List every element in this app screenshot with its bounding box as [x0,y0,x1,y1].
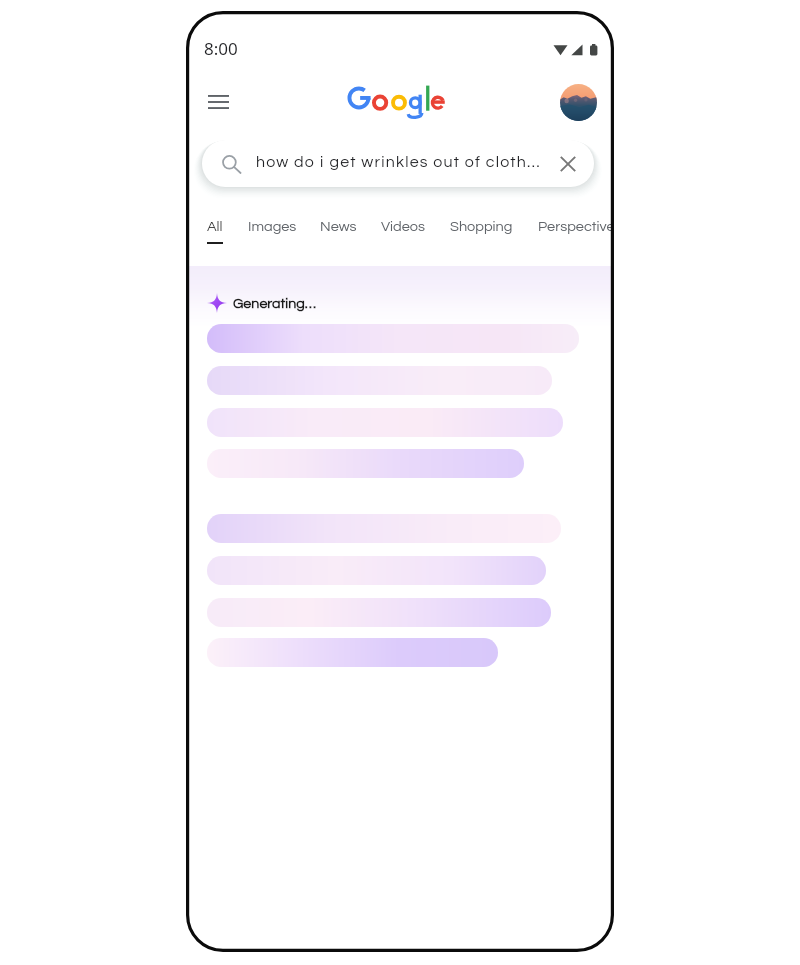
button[interactable]: Shopping [441,214,522,244]
staticText: 8:00 [204,37,238,60]
button[interactable]: Perspective [529,214,614,244]
button[interactable]: Videos [372,214,434,244]
button[interactable]: Account [560,84,597,121]
button[interactable]: Menu [197,81,239,123]
staticText: Shopping [450,219,513,234]
staticText: Videos [381,219,425,234]
button[interactable]: News [311,214,366,244]
button[interactable] [202,140,594,187]
staticText: News [320,219,357,234]
staticText: All [207,219,223,234]
staticText: Perspective [538,219,614,234]
button[interactable]: All [198,214,232,244]
button[interactable]: Clear search [552,148,584,180]
staticText: Generating… [233,296,317,311]
button[interactable]: Images [239,214,306,244]
staticText: how do i get wrinkles out of cloth… [256,154,541,170]
staticText: Images [248,219,297,234]
